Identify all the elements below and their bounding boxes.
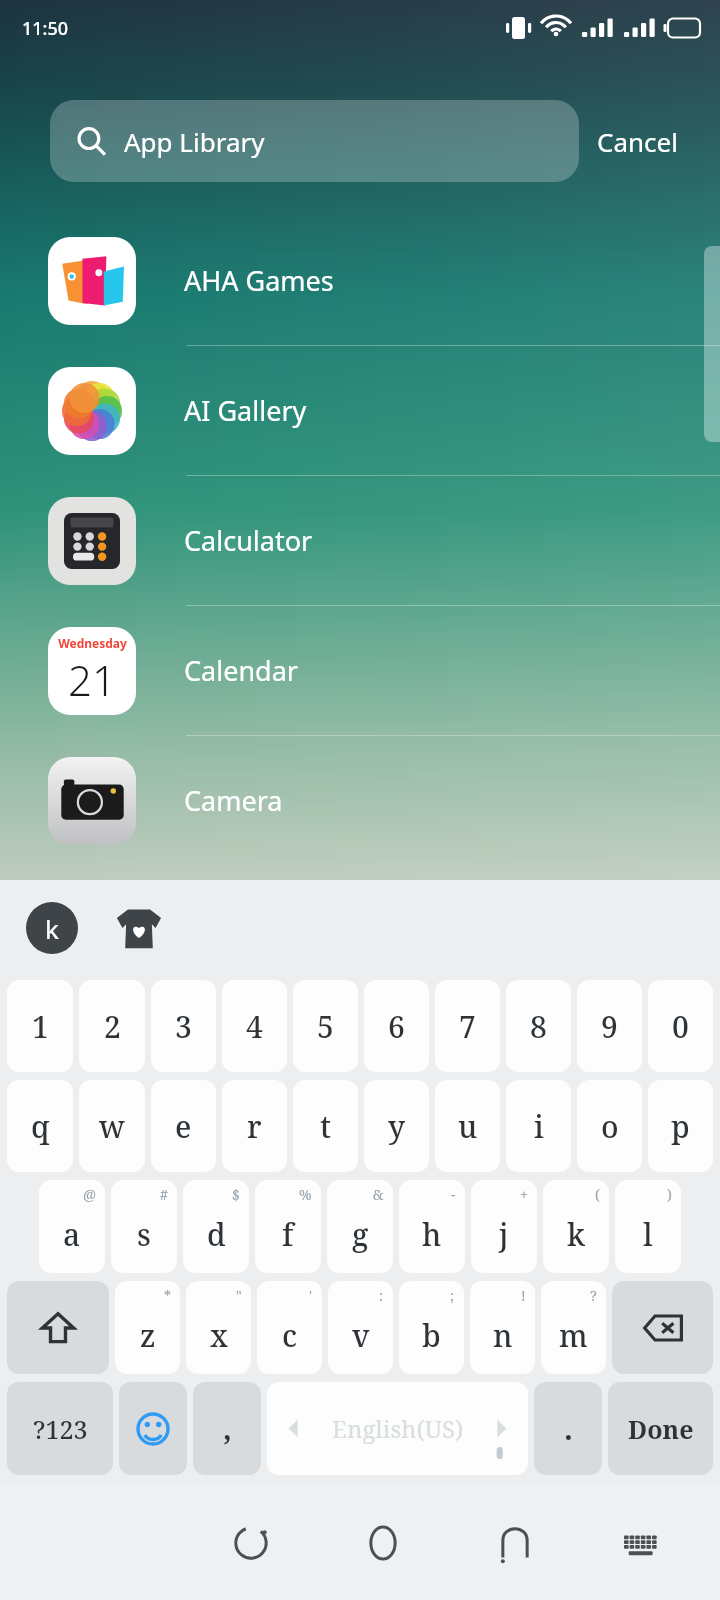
button[interactable]: &: [327, 1180, 393, 1273]
button[interactable]: Recents: [185, 1485, 317, 1600]
button[interactable]: 1: [7, 980, 73, 1072]
button[interactable]: Wednesday: [0, 606, 720, 736]
staticText: 11:50: [22, 16, 69, 41]
staticText: (: [595, 1185, 600, 1204]
button[interactable]: y: [364, 1080, 429, 1172]
button[interactable]: AI Gallery: [0, 346, 720, 476]
staticText: ,: [223, 1408, 232, 1449]
staticText: +: [520, 1185, 528, 1204]
staticText: m: [559, 1315, 588, 1356]
button[interactable]: e: [151, 1080, 216, 1172]
button[interactable]: Calculator: [0, 476, 720, 606]
button[interactable]: p: [648, 1080, 713, 1172]
staticText: b: [422, 1315, 441, 1356]
button[interactable]: .: [534, 1382, 602, 1475]
button[interactable]: 4: [222, 980, 287, 1072]
staticText: App Library: [124, 124, 265, 159]
button[interactable]: #: [111, 1180, 177, 1273]
button[interactable]: Done: [608, 1382, 713, 1475]
staticText: #: [160, 1185, 168, 1204]
button[interactable]: ): [615, 1180, 681, 1273]
button[interactable]: Camera: [0, 736, 720, 866]
button[interactable]: 3: [151, 980, 216, 1072]
staticText: v: [352, 1315, 370, 1356]
button[interactable]: -: [399, 1180, 465, 1273]
staticText: Wednesday: [58, 635, 127, 651]
staticText: AI Gallery: [184, 392, 307, 429]
button[interactable]: :: [328, 1281, 393, 1374]
button[interactable]: 9: [577, 980, 642, 1072]
button[interactable]: !: [470, 1281, 535, 1374]
staticText: &: [373, 1185, 384, 1204]
staticText: 1: [32, 1006, 49, 1047]
button[interactable]: @: [39, 1180, 105, 1273]
button[interactable]: 0: [648, 980, 713, 1072]
staticText: r: [247, 1106, 262, 1147]
button[interactable]: Themes: [112, 901, 166, 955]
button[interactable]: u: [435, 1080, 500, 1172]
button[interactable]: Backspace: [612, 1281, 713, 1374]
staticText: c: [282, 1315, 298, 1356]
button[interactable]: r: [222, 1080, 287, 1172]
staticText: AHA Games: [184, 262, 334, 299]
button[interactable]: o: [577, 1080, 642, 1172]
button[interactable]: 8: [506, 980, 571, 1072]
staticText: y: [388, 1106, 406, 1147]
button[interactable]: Back: [449, 1485, 581, 1600]
button[interactable]: App Library: [50, 100, 579, 182]
button[interactable]: i: [506, 1080, 571, 1172]
staticText: l: [643, 1214, 653, 1255]
button[interactable]: Shift: [7, 1281, 109, 1374]
button[interactable]: ?: [541, 1281, 606, 1374]
button[interactable]: ;: [399, 1281, 464, 1374]
staticText: 6: [388, 1006, 405, 1047]
staticText: u: [458, 1106, 478, 1147]
staticText: h: [422, 1214, 442, 1255]
button[interactable]: $: [183, 1180, 249, 1273]
button[interactable]: 5: [293, 980, 358, 1072]
staticText: Calendar: [184, 652, 298, 689]
staticText: i: [534, 1106, 544, 1147]
button[interactable]: ?123: [7, 1382, 113, 1475]
staticText: k: [45, 911, 59, 946]
button[interactable]: %: [255, 1180, 321, 1273]
button[interactable]: Space: [267, 1382, 528, 1475]
button[interactable]: +: [471, 1180, 537, 1273]
staticText: ": [236, 1286, 242, 1305]
button[interactable]: 7: [435, 980, 500, 1072]
button[interactable]: Hide keyboard: [581, 1485, 700, 1600]
staticText: English(US): [332, 1412, 464, 1445]
staticText: 8: [530, 1006, 547, 1047]
staticText: p: [671, 1106, 690, 1147]
staticText: s: [137, 1214, 151, 1255]
staticText: o: [601, 1106, 619, 1147]
staticText: a: [63, 1214, 81, 1255]
staticText: 21: [68, 651, 116, 708]
staticText: Cancel: [597, 124, 678, 159]
staticText: -: [451, 1185, 456, 1204]
staticText: n: [493, 1315, 513, 1356]
button[interactable]: 2: [79, 980, 145, 1072]
staticText: Calculator: [184, 522, 313, 559]
button[interactable]: AHA Games: [0, 216, 720, 346]
staticText: 9: [601, 1006, 618, 1047]
button[interactable]: ": [186, 1281, 251, 1374]
button[interactable]: Home: [317, 1485, 449, 1600]
button[interactable]: Emoji: [119, 1382, 187, 1475]
staticText: ;: [450, 1286, 455, 1305]
staticText: *: [164, 1286, 171, 1305]
button[interactable]: (: [543, 1180, 609, 1273]
button[interactable]: q: [7, 1080, 73, 1172]
button[interactable]: 6: [364, 980, 429, 1072]
button[interactable]: ,: [193, 1382, 261, 1475]
button[interactable]: ': [257, 1281, 322, 1374]
staticText: 2: [104, 1006, 121, 1047]
staticText: 3: [175, 1006, 192, 1047]
button[interactable]: *: [115, 1281, 180, 1374]
staticText: 0: [672, 1006, 689, 1047]
button[interactable]: Keyboard settings: [26, 902, 78, 954]
button[interactable]: w: [79, 1080, 145, 1172]
button[interactable]: t: [293, 1080, 358, 1172]
staticText: @: [83, 1185, 96, 1204]
button[interactable]: Cancel: [579, 110, 696, 173]
